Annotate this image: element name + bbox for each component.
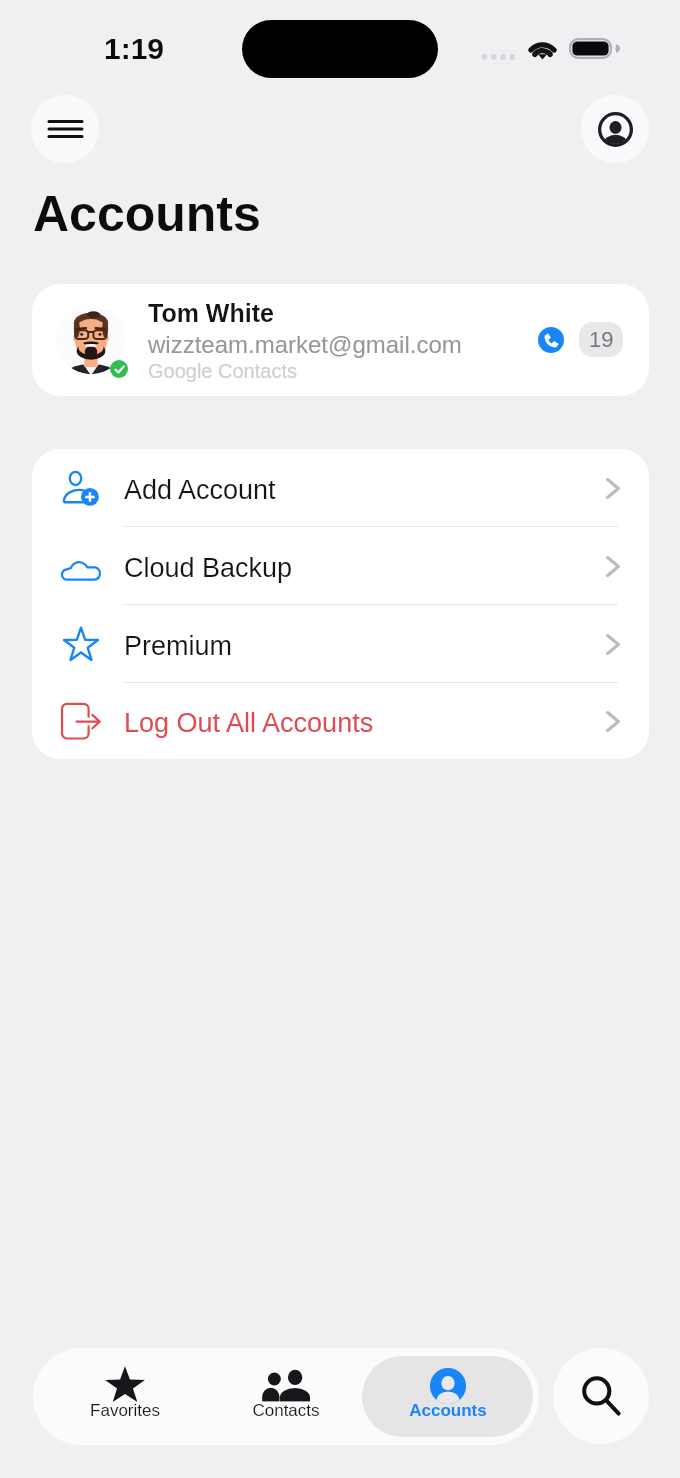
staticText: 1:19	[104, 32, 165, 66]
staticText: Contacts	[252, 1401, 320, 1420]
staticText: Google Contacts	[148, 360, 297, 382]
staticText: Favorites	[90, 1401, 160, 1420]
button[interactable]: Cloud Backup	[32, 527, 649, 605]
button[interactable]: Favorites	[44, 1356, 205, 1437]
button[interactable]: Contacts	[205, 1356, 366, 1437]
button[interactable]: Premium	[32, 605, 649, 683]
staticText: Accounts	[33, 186, 261, 242]
button[interactable]: Add Account	[32, 449, 649, 527]
button[interactable]: Log Out All Accounts	[32, 683, 649, 759]
staticText: Log Out All Accounts	[124, 708, 374, 738]
button[interactable]: Call	[538, 327, 564, 353]
staticText: Premium	[124, 631, 233, 661]
button[interactable]: Tom White	[32, 284, 649, 396]
staticText: Add Account	[124, 475, 276, 505]
staticText: Tom White	[148, 299, 274, 327]
staticText: wizzteam.market@gmail.com	[148, 331, 462, 358]
button[interactable]: Menu	[31, 95, 99, 163]
staticText: Accounts	[409, 1401, 487, 1420]
button[interactable]: Search	[553, 1348, 649, 1444]
button[interactable]: Accounts	[362, 1356, 533, 1437]
staticText: 19	[589, 327, 614, 352]
staticText: Cloud Backup	[124, 553, 293, 583]
button[interactable]: Profile	[581, 95, 649, 163]
